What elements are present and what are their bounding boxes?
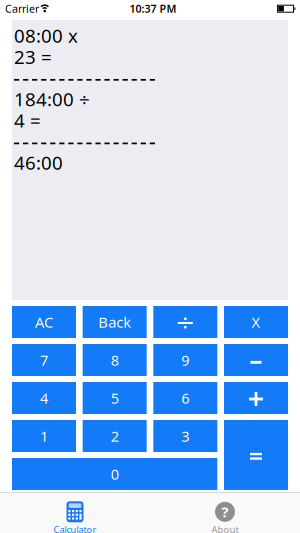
staticText: 184:00 ÷: [14, 87, 90, 111]
button[interactable]: 1: [12, 420, 76, 452]
staticText: 10:37 PM: [129, 2, 176, 16]
button[interactable]: Calculator: [0, 493, 150, 533]
staticText: 4 =: [14, 108, 41, 133]
staticText: 1: [40, 426, 48, 446]
button[interactable]: −: [224, 344, 288, 376]
staticText: 7: [40, 350, 48, 370]
button[interactable]: 7: [12, 344, 76, 376]
button[interactable]: ?: [150, 493, 300, 533]
button[interactable]: +: [224, 382, 288, 414]
button[interactable]: 0: [12, 458, 217, 490]
staticText: ?: [221, 502, 228, 522]
staticText: 2: [111, 426, 119, 446]
staticText: 0: [111, 464, 119, 484]
button[interactable]: 6: [153, 382, 217, 414]
staticText: 23 =: [14, 44, 52, 69]
button[interactable]: 2: [83, 420, 147, 452]
button[interactable]: =: [224, 420, 288, 490]
button[interactable]: Back: [83, 306, 147, 338]
button[interactable]: X: [224, 306, 288, 338]
staticText: AC: [35, 312, 53, 332]
button[interactable]: 5: [83, 382, 147, 414]
staticText: 46:00: [14, 150, 63, 175]
staticText: 4: [40, 388, 48, 408]
button[interactable]: 4: [12, 382, 76, 414]
staticText: Carrier: [5, 2, 39, 16]
button[interactable]: 8: [83, 344, 147, 376]
button[interactable]: 3: [153, 420, 217, 452]
staticText: About: [211, 523, 238, 533]
staticText: 6: [181, 388, 189, 408]
staticText: 3: [181, 426, 189, 446]
staticText: Calculator: [53, 523, 96, 533]
button[interactable]: 9: [153, 344, 217, 376]
staticText: 9: [181, 350, 189, 370]
button[interactable]: AC: [12, 306, 76, 338]
staticText: 5: [111, 388, 119, 408]
staticText: Back: [98, 312, 131, 332]
staticText: 08:00 x: [14, 23, 78, 48]
staticText: X: [251, 312, 260, 332]
button[interactable]: ÷: [153, 306, 217, 338]
staticText: 8: [111, 350, 119, 370]
